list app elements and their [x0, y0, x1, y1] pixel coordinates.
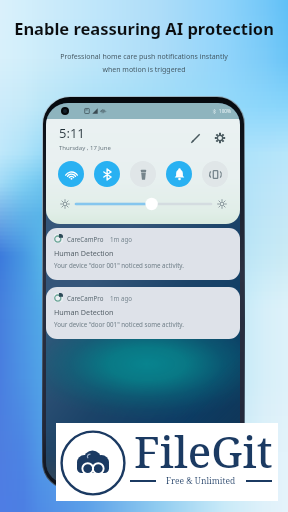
staticText: CareCamPro — [67, 294, 104, 302]
staticText: Professional home care push notification… — [0, 52, 288, 74]
button[interactable]: CareCamPro — [46, 287, 240, 339]
staticText: Your device "door 001" noticed some acti… — [54, 320, 184, 328]
staticText: FileGit — [134, 422, 273, 481]
staticText: Enable reassuring AI protection — [0, 17, 288, 39]
staticText: Human Detection — [54, 307, 114, 317]
button[interactable]: Settings — [212, 130, 228, 146]
staticText: Your device "door 001" noticed some acti… — [54, 261, 184, 269]
staticText: 1m ago — [110, 294, 132, 302]
staticText: 100% — [219, 108, 231, 114]
staticText: Thursday , 17 June — [59, 144, 111, 152]
button[interactable]: Notifications — [166, 161, 192, 187]
button[interactable]: CareCamPro — [46, 228, 240, 280]
staticText: 5:11 — [59, 124, 85, 142]
button[interactable]: Brightness — [76, 198, 211, 210]
staticText: Free & Unlimited — [166, 475, 236, 487]
button[interactable]: Flashlight — [130, 161, 156, 187]
button[interactable]: Edit quick settings — [187, 130, 203, 146]
staticText: Human Detection — [54, 248, 114, 258]
button[interactable]: Bluetooth — [94, 161, 120, 187]
staticText: CareCamPro — [67, 235, 104, 243]
button[interactable]: Wi-Fi — [58, 161, 84, 187]
staticText: 1m ago — [110, 235, 132, 243]
button[interactable]: Vibrate — [202, 161, 228, 187]
